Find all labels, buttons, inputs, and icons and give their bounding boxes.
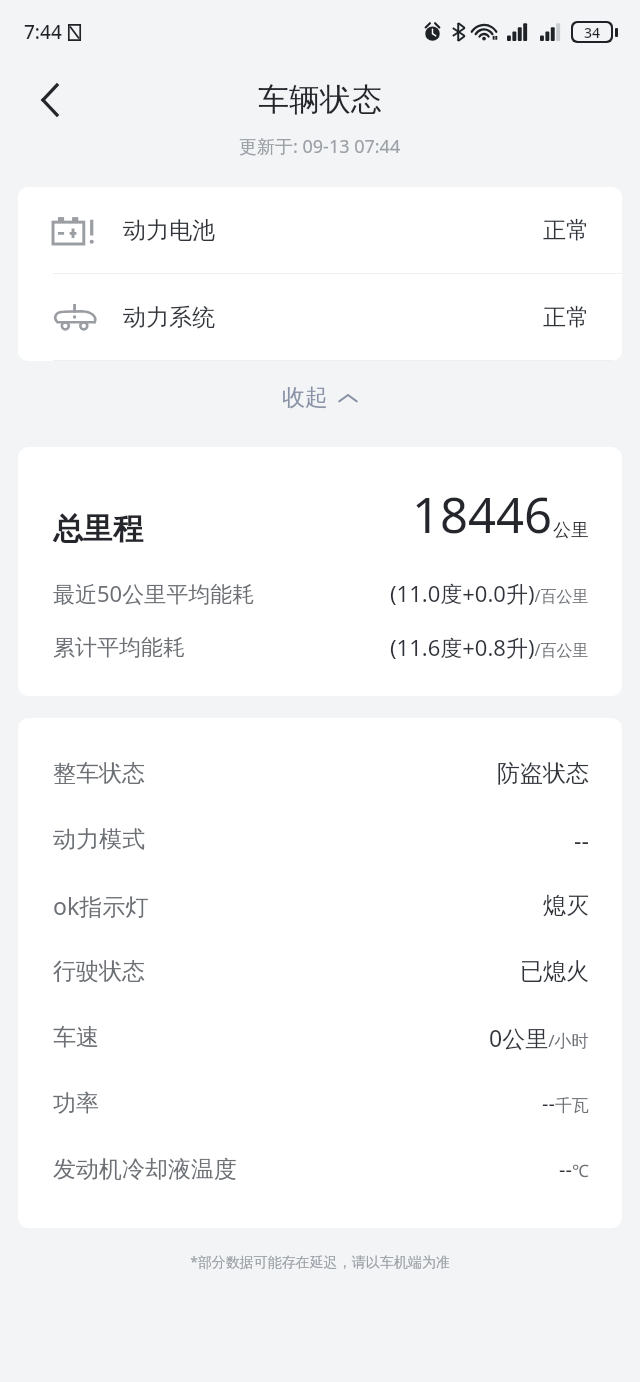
button[interactable]: 动力电池 [18, 187, 622, 273]
button[interactable]: ok指示灯 [53, 872, 589, 938]
button[interactable]: 功率 [53, 1070, 589, 1136]
staticText: 动力模式 [53, 825, 145, 854]
staticText: 功率 [53, 1089, 99, 1118]
staticText: 公里 [553, 519, 589, 542]
staticText: --千瓦 [542, 1090, 589, 1117]
staticText: 总里程 [53, 510, 143, 548]
button[interactable]: 车速 [53, 1004, 589, 1070]
staticText: --℃ [559, 1156, 589, 1183]
button[interactable]: 返回 [26, 76, 74, 124]
button[interactable]: 动力模式 [53, 806, 589, 872]
staticText: (11.0度+0.0升)/百公里 [390, 578, 589, 608]
staticText: 累计平均能耗 [53, 634, 185, 662]
staticText: 正常 [543, 303, 589, 332]
staticText: 动力系统 [123, 303, 215, 332]
staticText: 防盗状态 [497, 759, 589, 788]
button[interactable]: 收起 [264, 373, 376, 422]
staticText: 最近50公里平均能耗 [53, 578, 255, 608]
staticText: -- [574, 824, 589, 855]
button[interactable]: 动力系统 [18, 274, 622, 360]
staticText: 车速 [53, 1023, 99, 1052]
staticText: 34 [584, 23, 601, 41]
staticText: 收起 [282, 383, 328, 412]
staticText: 整车状态 [53, 759, 145, 788]
staticText: 正常 [543, 216, 589, 245]
staticText: 更新于: 09-13 07:44 [239, 134, 401, 159]
staticText: (11.6度+0.8升)/百公里 [390, 632, 589, 662]
staticText: 熄灭 [543, 891, 589, 920]
button[interactable]: 整车状态 [53, 740, 589, 806]
button[interactable]: 累计平均能耗 [53, 632, 589, 662]
staticText: 18446 [412, 481, 553, 548]
staticText: *部分数据可能存在延迟，请以车机端为准 [0, 1252, 640, 1271]
staticText: 7:44 [24, 19, 62, 45]
button[interactable]: 最近50公里平均能耗 [53, 578, 589, 608]
staticText: 行驶状态 [53, 957, 145, 986]
staticText: ok指示灯 [53, 890, 149, 921]
staticText: 动力电池 [123, 216, 215, 245]
staticText: 已熄火 [520, 957, 589, 986]
staticText: 车辆状态 [258, 80, 382, 119]
button[interactable]: 发动机冷却液温度 [53, 1136, 589, 1202]
staticText: 0公里/小时 [489, 1022, 589, 1053]
staticText: 发动机冷却液温度 [53, 1155, 237, 1184]
button[interactable]: 行驶状态 [53, 938, 589, 1004]
